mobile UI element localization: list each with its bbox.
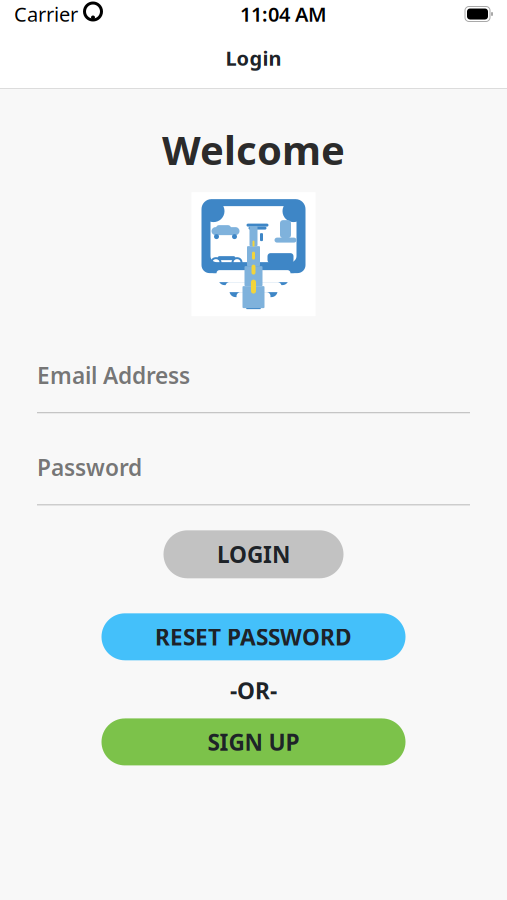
staticText: 11:04 AM bbox=[240, 1, 327, 27]
staticText: -OR- bbox=[230, 675, 277, 705]
staticText: Password bbox=[37, 452, 142, 482]
staticText: LOGIN bbox=[217, 539, 290, 569]
button[interactable]: SIGN UP bbox=[101, 718, 405, 765]
staticText: Login bbox=[225, 45, 281, 71]
staticText: RESET PASSWORD bbox=[155, 622, 352, 652]
button[interactable]: LOGIN bbox=[163, 530, 343, 578]
button[interactable]: RESET PASSWORD bbox=[101, 613, 405, 660]
staticText: Carrier bbox=[14, 1, 78, 27]
staticText: Email Address bbox=[37, 360, 190, 390]
staticText: Welcome bbox=[162, 123, 345, 176]
staticText: SIGN UP bbox=[207, 727, 299, 757]
